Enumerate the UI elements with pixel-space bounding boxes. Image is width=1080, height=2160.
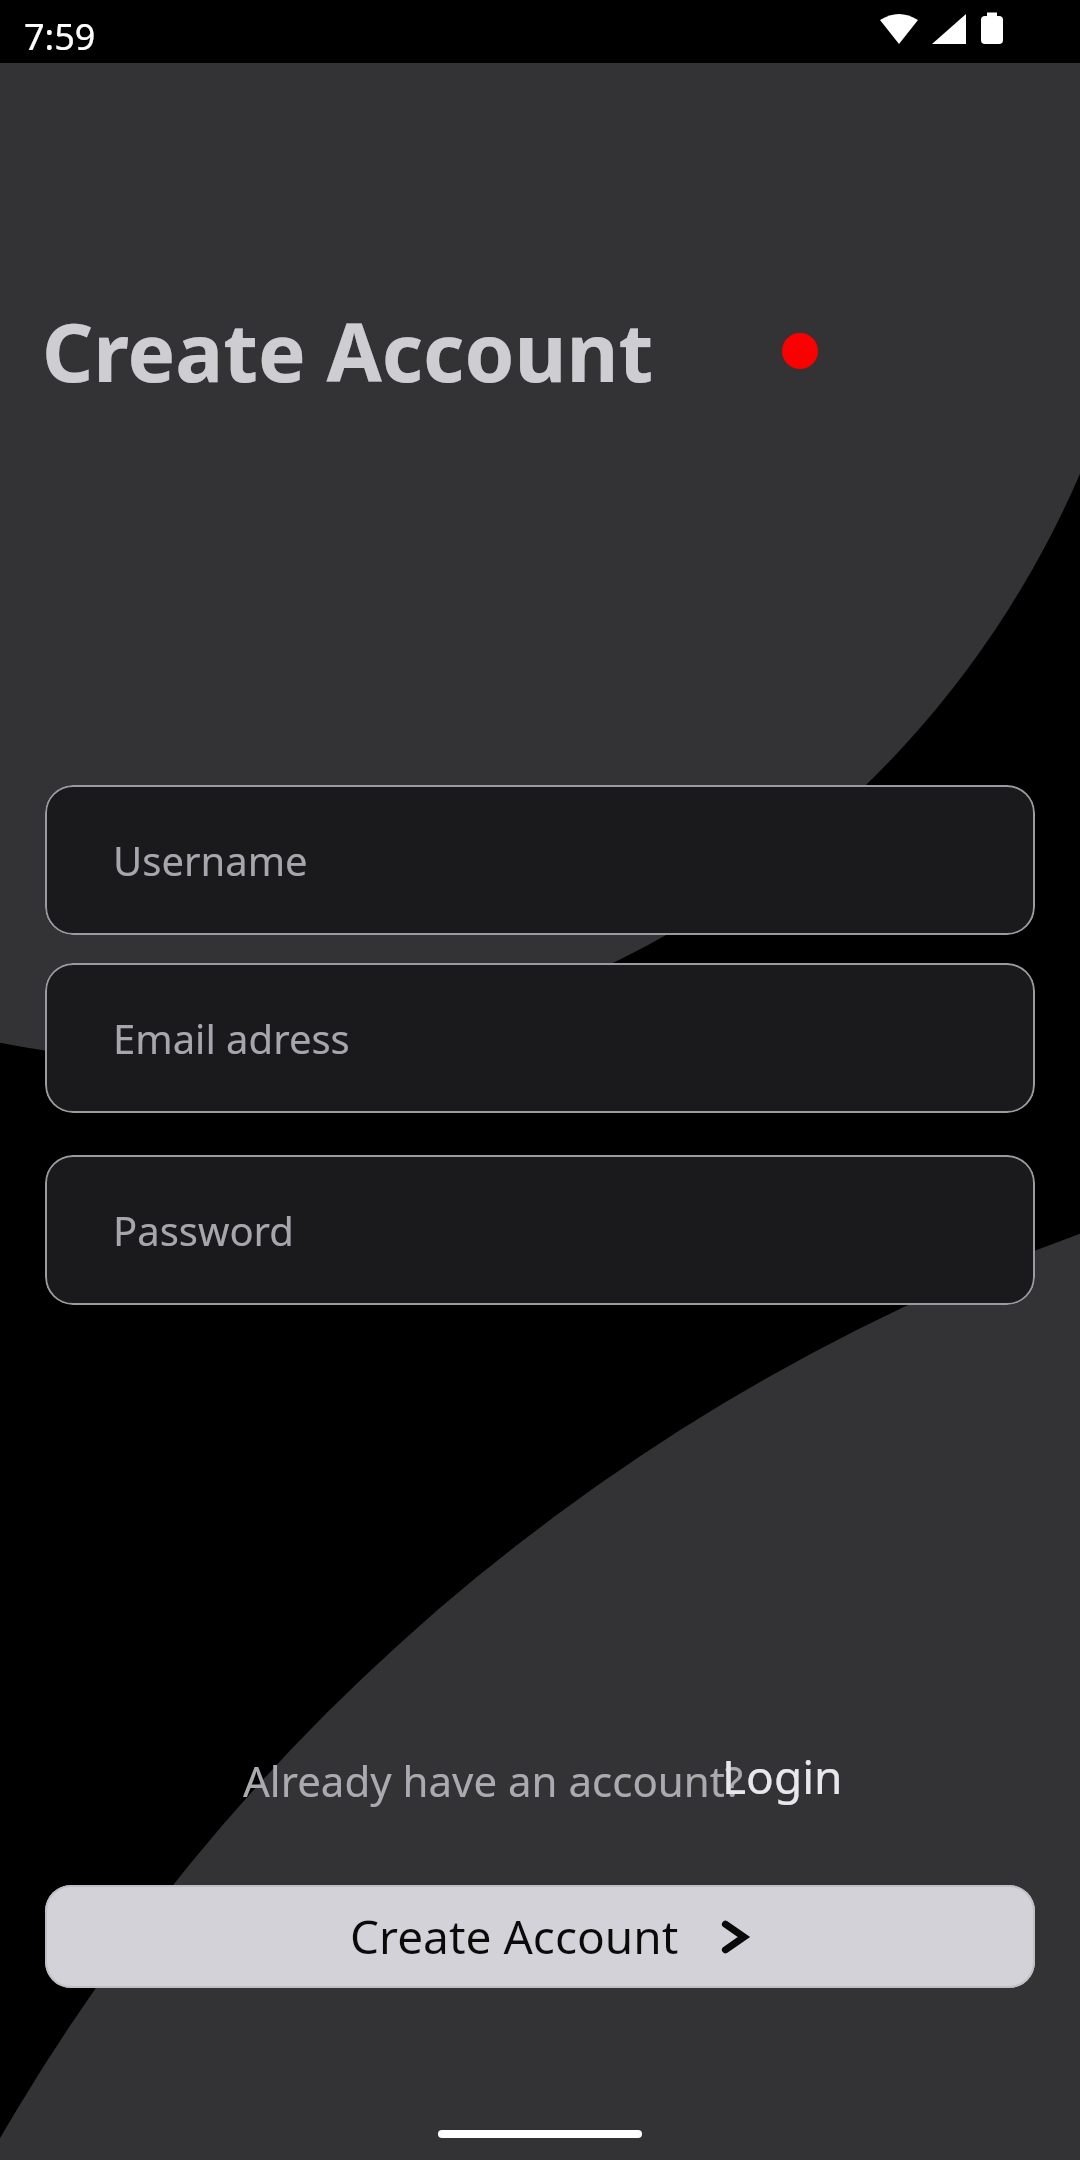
button[interactable]: Password bbox=[45, 1155, 1035, 1305]
button[interactable]: Create Account bbox=[45, 1885, 1035, 1988]
staticText: Password bbox=[113, 1203, 294, 1257]
button[interactable]: Email adress bbox=[45, 963, 1035, 1113]
button[interactable]: Login bbox=[722, 1745, 843, 1808]
staticText: 7:59 bbox=[24, 12, 96, 61]
staticText: Username bbox=[113, 833, 308, 887]
staticText: Already have an account? bbox=[243, 1752, 744, 1809]
staticText: Create Account bbox=[42, 296, 654, 405]
staticText: Email adress bbox=[113, 1011, 350, 1065]
staticText: Create Account bbox=[350, 1905, 679, 1968]
staticText: Login bbox=[722, 1745, 843, 1808]
button[interactable]: Username bbox=[45, 785, 1035, 935]
